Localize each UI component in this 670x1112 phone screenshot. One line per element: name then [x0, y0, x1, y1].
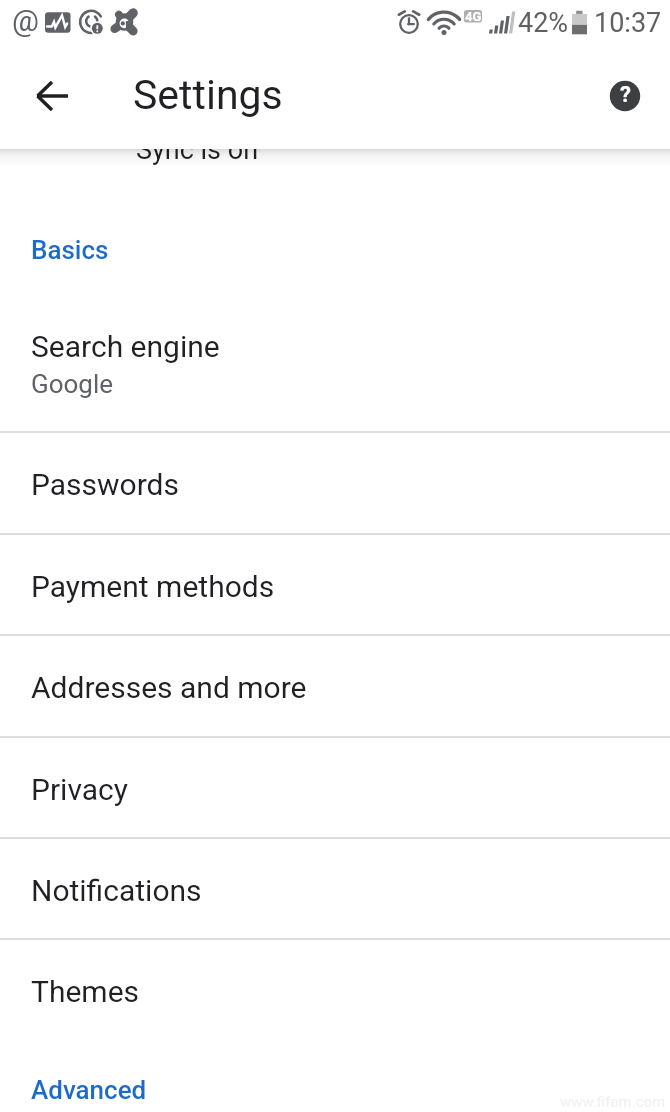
staticText: Sync is on [136, 134, 259, 166]
button[interactable]: Sync is on [0, 149, 670, 196]
button[interactable]: Navigate up [28, 72, 76, 120]
button[interactable]: Search engine [0, 286, 670, 432]
staticText: www.fifam.com [560, 1093, 666, 1111]
staticText: Google [31, 369, 114, 399]
staticText: Basics [31, 235, 109, 265]
button[interactable]: Notifications [0, 838, 670, 939]
button[interactable]: Themes [0, 939, 670, 1040]
staticText: ? [620, 82, 631, 108]
staticText: Themes [31, 974, 140, 1009]
button[interactable]: Help and feedback [603, 74, 647, 118]
staticText: Notifications [31, 873, 202, 908]
staticText: 10:37 [594, 7, 662, 39]
staticText: Addresses and more [31, 670, 307, 705]
staticText: Settings [133, 71, 283, 119]
staticText: Advanced [31, 1075, 147, 1105]
button[interactable]: Payment methods [0, 534, 670, 635]
staticText: Payment methods [31, 569, 275, 604]
staticText: @ [12, 3, 39, 38]
button[interactable]: Privacy [0, 737, 670, 838]
staticText: Passwords [31, 467, 179, 502]
button[interactable]: Passwords [0, 432, 670, 533]
staticText: Search engine [31, 329, 220, 364]
staticText: Privacy [31, 772, 128, 807]
staticText: 4G [465, 9, 482, 24]
staticText: 42% [518, 7, 569, 39]
button[interactable]: Addresses and more [0, 635, 670, 736]
